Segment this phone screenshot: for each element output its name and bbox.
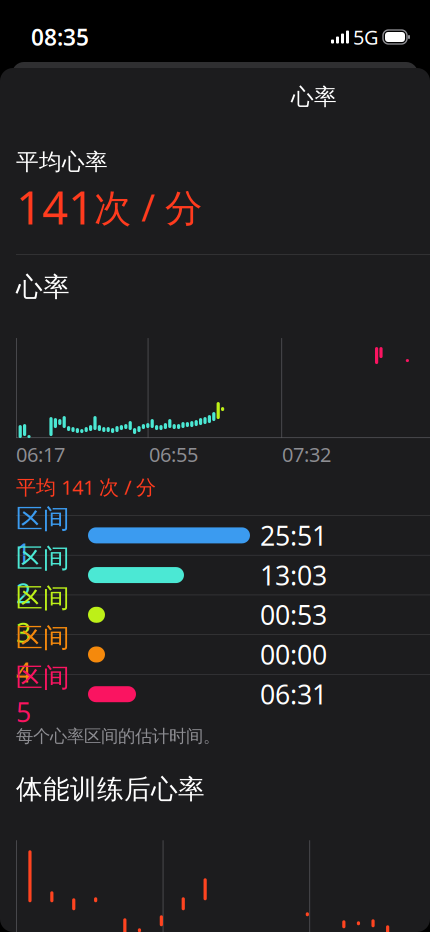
button[interactable]: 区间 2	[16, 556, 430, 595]
button[interactable]: 区间 4	[16, 635, 430, 674]
staticText: 25:51	[260, 518, 327, 553]
staticText: 06:17	[16, 441, 65, 468]
staticText: 07:32	[282, 441, 331, 468]
staticText: 区间 1	[16, 500, 70, 571]
staticText: 141	[16, 177, 94, 237]
button[interactable]: 区间 3	[16, 595, 430, 634]
staticText: 心率	[16, 271, 70, 303]
staticText: 5G	[353, 24, 379, 50]
staticText: 每个心率区间的估计时间。	[16, 726, 220, 747]
staticText: 平均心率	[16, 148, 108, 176]
staticText: 区间 2	[16, 540, 70, 610]
staticText: 区间 3	[16, 579, 70, 650]
staticText: 13:03	[260, 557, 327, 593]
staticText: 次 / 分	[94, 182, 202, 232]
staticText: 平均 141 次 / 分	[16, 474, 156, 500]
button[interactable]: 区间 1	[16, 516, 430, 555]
button[interactable]: 区间 5	[16, 675, 430, 714]
staticText: 00:53	[260, 597, 327, 632]
staticText: 06:55	[149, 441, 198, 468]
staticText: 08:35	[31, 22, 89, 52]
staticText: 区间 4	[16, 619, 70, 690]
staticText: 区间 5	[16, 659, 70, 730]
staticText: 体能训练后心率	[16, 773, 205, 806]
staticText: 心率	[291, 83, 337, 111]
staticText: 00:00	[260, 637, 327, 672]
staticText: 06:31	[260, 676, 327, 712]
